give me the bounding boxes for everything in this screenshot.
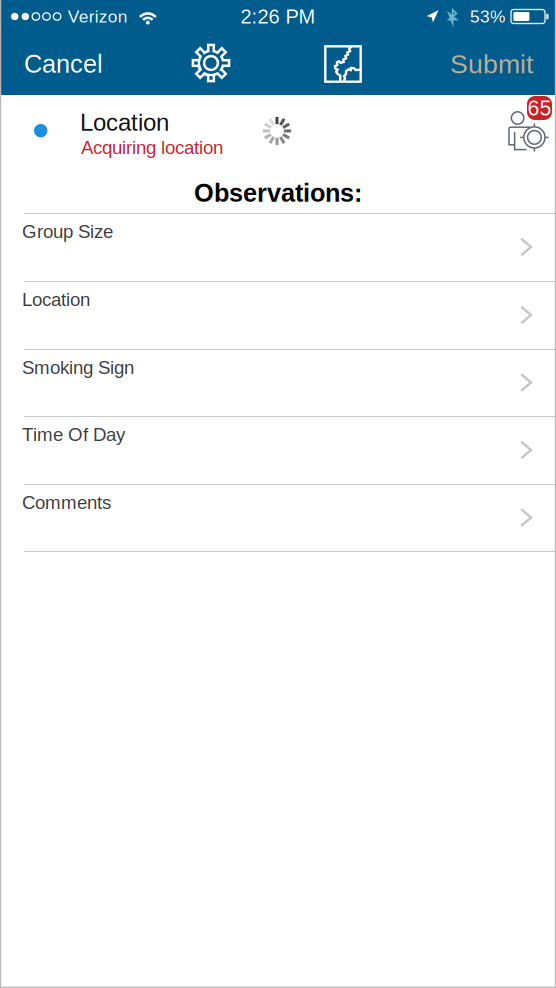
button[interactable]: Submit xyxy=(430,33,556,95)
staticText: Cancel xyxy=(24,50,103,78)
staticText: 2:26 PM xyxy=(240,5,315,28)
button[interactable]: Time Of Day xyxy=(0,416,556,484)
staticText: Verizon xyxy=(68,7,128,26)
staticText: Submit xyxy=(450,49,533,79)
staticText: Smoking Sign xyxy=(22,357,134,378)
staticText: Location xyxy=(80,109,169,136)
button[interactable]: Map xyxy=(314,33,372,95)
staticText: Location xyxy=(22,289,90,310)
button[interactable]: Group Size xyxy=(0,213,556,281)
button[interactable]: Smoking Sign xyxy=(0,349,556,416)
staticText: Group Size xyxy=(22,221,113,242)
button[interactable]: Settings xyxy=(182,33,240,95)
staticText: Comments xyxy=(22,492,111,513)
staticText: 65 xyxy=(527,96,551,120)
staticText: Acquiring location xyxy=(81,137,223,158)
staticText: Time Of Day xyxy=(22,424,125,445)
button[interactable]: Location xyxy=(0,281,556,349)
staticText: 53% xyxy=(470,7,505,26)
staticText: Observations: xyxy=(194,179,362,207)
button[interactable]: Cancel xyxy=(0,33,124,95)
button[interactable]: Comments xyxy=(0,484,556,551)
